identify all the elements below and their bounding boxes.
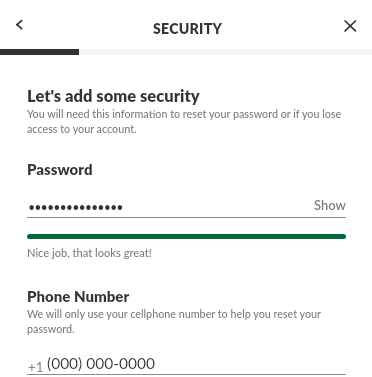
staticText: (000) 000-0000 bbox=[47, 354, 155, 373]
staticText: Let's add some security bbox=[27, 86, 200, 106]
button[interactable]: Close bbox=[332, 7, 369, 44]
staticText: Password bbox=[27, 160, 93, 178]
staticText: SECURITY bbox=[153, 20, 223, 37]
button[interactable]: Back bbox=[3, 8, 36, 41]
staticText: +1 bbox=[28, 359, 44, 375]
staticText: You will need this information to reset … bbox=[27, 106, 347, 136]
button[interactable]: Show bbox=[314, 197, 346, 213]
staticText: We will only use your cellphone number t… bbox=[27, 306, 347, 336]
staticText: Nice job, that looks great! bbox=[27, 246, 152, 259]
staticText: ••••••••••••••• bbox=[28, 200, 123, 215]
staticText: Phone Number bbox=[27, 287, 130, 305]
